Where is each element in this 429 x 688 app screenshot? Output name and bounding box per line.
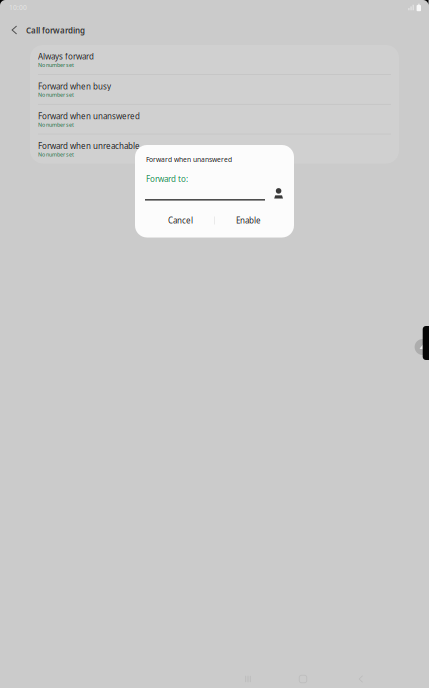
staticText: Enable xyxy=(236,215,261,226)
button[interactable]: Open edge panel xyxy=(412,326,429,366)
button[interactable]: Always forward xyxy=(30,45,399,74)
button[interactable]: Forward when unanswered xyxy=(30,104,399,134)
staticText: Forward to: xyxy=(146,174,188,184)
staticText: No number set xyxy=(38,151,74,158)
staticText: 10:00 xyxy=(9,3,27,12)
staticText: Always forward xyxy=(38,51,94,62)
staticText: Forward when unanswered xyxy=(38,111,140,121)
staticText: No number set xyxy=(38,91,74,98)
staticText: No number set xyxy=(38,61,74,69)
staticText: Call forwarding xyxy=(26,25,85,36)
button[interactable]: Back xyxy=(6,14,23,44)
staticText: Forward when busy xyxy=(38,81,111,92)
button[interactable]: Cancel xyxy=(147,209,214,231)
staticText: Cancel xyxy=(168,215,193,226)
staticText: Forward when unreachable xyxy=(38,141,140,151)
staticText: No number set xyxy=(38,121,74,128)
button[interactable]: Enable xyxy=(215,209,282,231)
button[interactable]: Forward when busy xyxy=(30,74,399,104)
staticText: Forward when unanswered xyxy=(146,155,232,164)
button[interactable]: Pick contact xyxy=(272,186,285,200)
button[interactable]: Forward when unreachable xyxy=(30,134,399,163)
